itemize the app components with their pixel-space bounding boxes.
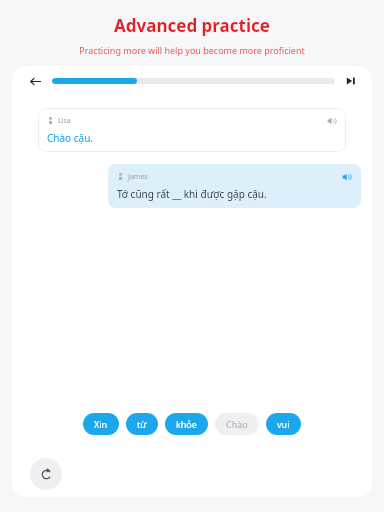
button[interactable]: Xin [83,413,119,435]
button[interactable]: từ [126,413,158,435]
button[interactable]: Chào [215,413,259,435]
staticText: Practicing more will help you become mor… [79,44,305,56]
button[interactable]: Back [26,72,44,90]
staticText: Tớ cũng rất __ khi được gặp cậu. [117,187,267,201]
button[interactable]: vui [266,413,301,435]
button[interactable]: Lisa [38,108,346,152]
staticText: Xin [94,418,108,430]
staticText: từ [137,418,147,430]
button[interactable]: Play audio [326,115,337,126]
staticText: James [128,172,148,182]
staticText: Advanced practice [114,14,270,37]
button[interactable]: Reset [30,458,62,490]
staticText: Lisa [58,116,71,126]
button[interactable]: Play audio [341,171,352,182]
staticText: Chào [226,418,248,430]
button[interactable]: Skip [344,74,358,88]
button[interactable]: khỏe [165,413,208,435]
staticText: Chào cậu. [47,131,94,145]
staticText: khỏe [176,418,197,430]
button[interactable]: James [108,164,361,208]
staticText: vui [277,418,290,430]
